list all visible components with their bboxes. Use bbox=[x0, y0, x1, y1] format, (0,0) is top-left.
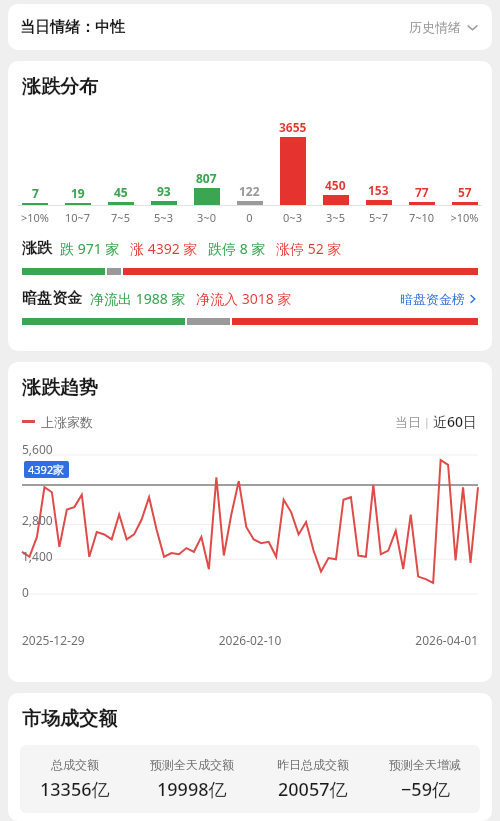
staticText: 93 bbox=[157, 183, 171, 199]
button[interactable]: 昨日总成交额 bbox=[255, 745, 370, 813]
staticText: 净流入 3018 家 bbox=[196, 289, 292, 308]
button[interactable]: 预测全天成交额 bbox=[129, 745, 255, 813]
button[interactable]: 涨跌 bbox=[8, 239, 492, 258]
staticText: 122 bbox=[239, 183, 260, 199]
staticText: 涨停 52 家 bbox=[276, 239, 342, 258]
staticText: | bbox=[421, 414, 433, 429]
staticText: 19998亿 bbox=[157, 777, 227, 802]
staticText: 5~3 bbox=[142, 210, 185, 225]
staticText: 暗盘资金榜 bbox=[400, 291, 465, 307]
staticText: >10% bbox=[443, 210, 486, 225]
staticText: 3~0 bbox=[185, 210, 228, 225]
staticText: 3~5 bbox=[314, 210, 357, 225]
staticText: 跌 971 家 bbox=[60, 239, 120, 258]
staticText: 7 bbox=[32, 185, 39, 201]
staticText: 跌停 8 家 bbox=[208, 239, 266, 258]
staticText: 暗盘资金 bbox=[22, 289, 82, 308]
staticText: 1,400 bbox=[22, 548, 53, 564]
staticText: 450 bbox=[325, 177, 346, 193]
staticText: 涨跌 bbox=[22, 239, 52, 258]
staticText: 5,600 bbox=[22, 441, 53, 457]
staticText: 2,800 bbox=[22, 512, 53, 528]
staticText: 2026-04-01 bbox=[326, 632, 478, 648]
staticText: 7~10 bbox=[400, 210, 443, 225]
staticText: 当日情绪：中性 bbox=[20, 18, 125, 37]
staticText: 3655 bbox=[279, 119, 307, 135]
staticText: 2025-12-29 bbox=[22, 632, 174, 648]
staticText: 2026-02-10 bbox=[174, 632, 326, 648]
staticText: 4392家 bbox=[28, 462, 65, 477]
staticText: 历史情绪 bbox=[409, 19, 461, 35]
button[interactable]: 暗盘资金 bbox=[8, 289, 492, 308]
staticText: 净流出 1988 家 bbox=[90, 289, 186, 308]
staticText: 涨跌趋势 bbox=[22, 376, 98, 400]
staticText: 预测全天增减 bbox=[389, 757, 461, 772]
staticText: 0~3 bbox=[271, 210, 314, 225]
staticText: −59亿 bbox=[401, 777, 450, 802]
button[interactable]: 近60日 bbox=[433, 412, 478, 431]
staticText: 0 bbox=[228, 210, 271, 225]
staticText: 19 bbox=[71, 185, 85, 201]
staticText: >10% bbox=[14, 210, 56, 225]
button[interactable]: 总成交额 bbox=[20, 745, 129, 813]
button[interactable]: 历史情绪 bbox=[407, 15, 480, 39]
staticText: 涨 4392 家 bbox=[130, 239, 198, 258]
staticText: 上涨家数 bbox=[41, 414, 93, 430]
staticText: 13356亿 bbox=[40, 777, 110, 802]
staticText: 57 bbox=[458, 184, 472, 200]
staticText: 0 bbox=[22, 584, 29, 600]
staticText: 5~7 bbox=[357, 210, 400, 225]
staticText: 153 bbox=[368, 182, 389, 198]
staticText: 涨跌分布 bbox=[22, 75, 98, 99]
button[interactable]: 当日 bbox=[395, 414, 421, 430]
staticText: 10~7 bbox=[56, 210, 99, 225]
staticText: 7~5 bbox=[99, 210, 142, 225]
staticText: 77 bbox=[415, 184, 429, 200]
staticText: 20057亿 bbox=[278, 777, 348, 802]
button[interactable]: 预测全天增减 bbox=[370, 745, 480, 813]
staticText: 昨日总成交额 bbox=[277, 757, 349, 772]
staticText: 45 bbox=[114, 184, 128, 200]
staticText: 预测全天成交额 bbox=[150, 757, 234, 772]
staticText: 总成交额 bbox=[51, 757, 99, 772]
staticText: 市场成交额 bbox=[22, 707, 117, 731]
staticText: 807 bbox=[196, 170, 217, 186]
